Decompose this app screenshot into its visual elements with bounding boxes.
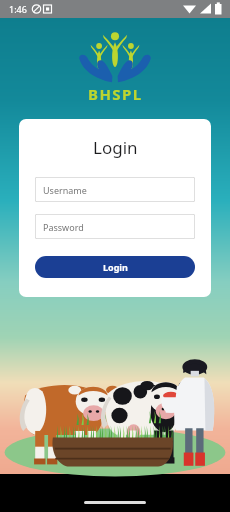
button[interactable]: Username xyxy=(35,177,195,202)
staticText: Password xyxy=(43,221,84,233)
staticText: Username xyxy=(43,184,87,196)
staticText: Login xyxy=(103,261,128,273)
staticText: BHSPL xyxy=(88,84,143,104)
button[interactable]: Login xyxy=(35,256,195,278)
staticText: Login xyxy=(93,136,138,159)
button[interactable]: Password xyxy=(35,214,195,239)
staticText: 1:46 xyxy=(9,3,27,15)
